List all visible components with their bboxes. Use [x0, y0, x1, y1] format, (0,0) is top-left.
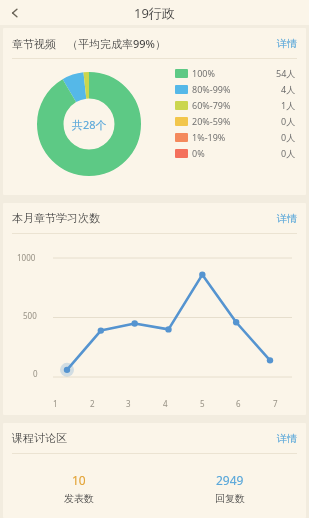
staticText: 10: [72, 472, 86, 488]
button[interactable]: 详情: [268, 206, 306, 231]
staticText: 0人: [281, 131, 296, 143]
staticText: 0人: [281, 115, 296, 127]
staticText: 7: [273, 398, 278, 409]
staticText: 3: [126, 398, 131, 409]
staticText: 课程讨论区: [12, 431, 67, 445]
staticText: 5: [200, 398, 205, 409]
staticText: 19行政: [134, 4, 175, 22]
staticText: 60%-79%: [192, 99, 281, 111]
staticText: 详情: [277, 37, 297, 50]
staticText: 发表数: [64, 492, 94, 505]
button[interactable]: 2949: [154, 472, 306, 505]
staticText: 1: [53, 398, 58, 409]
button[interactable]: 10: [3, 472, 154, 505]
staticText: 章节视频 （平均完成率99%）: [12, 36, 166, 51]
staticText: 80%-99%: [192, 83, 281, 95]
staticText: 1人: [281, 99, 296, 111]
button[interactable]: 详情: [268, 426, 306, 451]
staticText: 0人: [281, 147, 296, 159]
staticText: 回复数: [215, 492, 245, 505]
staticText: 1000: [17, 252, 36, 263]
staticText: 详情: [277, 432, 297, 445]
staticText: 20%-59%: [192, 115, 281, 127]
staticText: 共28个: [72, 117, 107, 132]
staticText: 100%: [192, 67, 276, 79]
staticText: 0: [33, 368, 38, 379]
staticText: 500: [23, 310, 37, 321]
staticText: 4人: [281, 83, 296, 95]
button[interactable]: Back: [0, 0, 30, 25]
staticText: 54人: [276, 67, 296, 79]
staticText: 4: [163, 398, 168, 409]
staticText: 0%: [192, 147, 281, 159]
staticText: 本月章节学习次数: [12, 211, 100, 225]
staticText: 6: [236, 398, 241, 409]
button[interactable]: 详情: [268, 31, 306, 56]
staticText: 2: [90, 398, 95, 409]
staticText: 1%-19%: [192, 131, 281, 143]
staticText: 详情: [277, 212, 297, 225]
staticText: 2949: [216, 472, 244, 488]
